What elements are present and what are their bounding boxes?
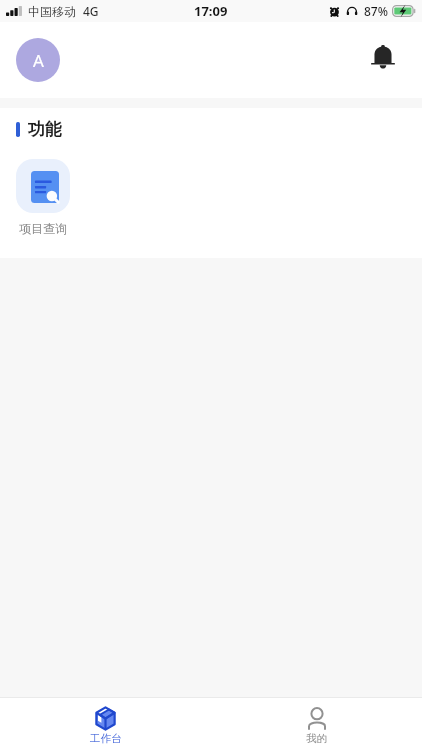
button[interactable]: Profile <box>16 38 60 82</box>
staticText: 功能 <box>28 119 62 140</box>
staticText: 我的 <box>306 732 327 745</box>
button[interactable]: 项目查询 <box>0 159 86 236</box>
staticText: 17:09 <box>194 2 228 20</box>
button[interactable]: 我的 <box>211 698 422 750</box>
staticText: 项目查询 <box>19 221 67 236</box>
staticText: 87% <box>364 3 388 19</box>
staticText: 中国移动 <box>28 4 76 19</box>
button[interactable]: 工作台 <box>0 698 211 750</box>
button[interactable]: Notifications <box>363 38 403 78</box>
staticText: A <box>33 49 44 72</box>
staticText: 4G <box>83 3 99 19</box>
staticText: 工作台 <box>90 732 122 745</box>
